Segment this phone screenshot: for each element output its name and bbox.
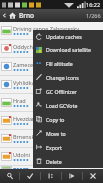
button[interactable]: Filter	[0, 169, 19, 183]
staticText: Zamecek	[13, 61, 37, 68]
button[interactable]: Fill altitude	[33, 56, 103, 70]
button[interactable]: More	[83, 169, 103, 183]
staticText: Hvezdarna	[13, 115, 41, 122]
button[interactable]: Hrad	[0, 94, 103, 111]
staticText: Hrad	[13, 97, 26, 104]
staticText: Move to	[46, 130, 66, 137]
staticText: Vyhlidka	[13, 79, 35, 86]
staticText: GC Offlinizer	[46, 88, 77, 95]
button[interactable]: Load GCVote	[33, 98, 103, 112]
button[interactable]: Change icons	[33, 70, 103, 84]
staticText: Fill altitude	[46, 60, 73, 67]
staticText: Download satellite maps	[46, 46, 103, 53]
staticText: Export	[46, 144, 62, 151]
button[interactable]: Brno	[8, 9, 86, 22]
staticText: Driving range Zabovresky	[13, 25, 79, 32]
button[interactable]: Zoo Brno	[0, 166, 103, 169]
staticText: Load GCVote	[46, 102, 78, 109]
button[interactable]: Export	[33, 140, 103, 154]
button[interactable]: Driving range Zabovresky	[0, 22, 103, 39]
button[interactable]: Copy to	[33, 112, 103, 126]
button[interactable]: Download satellite maps	[33, 43, 103, 56]
button[interactable]: Zamecek	[0, 58, 103, 75]
button[interactable]: Udolni	[0, 148, 103, 165]
staticText: 16:22	[86, 1, 101, 8]
button[interactable]: Move to	[33, 126, 103, 140]
button[interactable]: Back	[0, 9, 8, 22]
staticText: Update caches	[46, 33, 82, 40]
staticText: Udolni	[13, 151, 30, 158]
staticText: Zoo Brno	[13, 166, 37, 169]
button[interactable]: Hvezdarna	[0, 112, 103, 129]
button[interactable]: Select	[20, 169, 40, 183]
button[interactable]: Oddychovy	[0, 40, 103, 57]
staticText: Delete	[46, 158, 62, 165]
button[interactable]: Navigate	[62, 169, 82, 183]
button[interactable]: Delete	[33, 154, 103, 168]
staticText: Copy to	[46, 116, 65, 123]
staticText: Oddychovy	[13, 43, 42, 50]
button[interactable]: GC Offlinizer	[33, 84, 103, 98]
button[interactable]: Brnenska	[0, 130, 103, 147]
staticText: 1/266	[86, 12, 101, 19]
staticText: Brnenska	[13, 133, 38, 140]
staticText: Brno	[19, 11, 35, 20]
staticText: Change icons	[46, 74, 79, 81]
button[interactable]: Add waypoint	[41, 169, 61, 183]
button[interactable]: Update caches	[33, 30, 103, 43]
button[interactable]: Vyhlidka	[0, 76, 103, 93]
